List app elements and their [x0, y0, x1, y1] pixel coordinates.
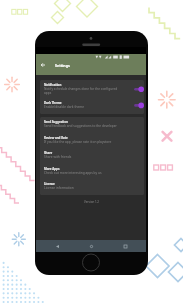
staticText: Review and Rate	[44, 136, 68, 140]
staticText: Share with friends	[44, 155, 72, 159]
staticText: Notification	[44, 83, 62, 87]
staticText: More Apps	[44, 167, 60, 171]
button[interactable]: Back	[53, 242, 61, 250]
button[interactable]: Share	[40, 148, 144, 164]
button[interactable]: Dark Theme	[40, 98, 144, 114]
button[interactable]: Review and Rate	[40, 133, 144, 149]
staticText: Notify schedule changes done for the con…	[44, 87, 121, 95]
staticText: Version 1.2	[40, 200, 143, 204]
staticText: Check out more interesting apps by us	[44, 171, 102, 175]
staticText: Share	[44, 151, 53, 155]
staticText: Settings	[55, 63, 70, 68]
button[interactable]: Notification	[40, 80, 144, 98]
button[interactable]: Recents	[121, 242, 129, 250]
staticText: License information	[44, 186, 74, 190]
staticText: Dark Theme	[44, 101, 62, 105]
button[interactable]: Home	[87, 242, 95, 250]
staticText: Send Suggestion	[44, 120, 68, 124]
staticText: Send feedback and suggestions to the dev…	[44, 124, 117, 128]
button[interactable]: License	[40, 179, 144, 195]
staticText: License	[44, 182, 55, 186]
button[interactable]: More Apps	[40, 164, 144, 180]
button[interactable]: Back	[38, 60, 47, 69]
staticText: Enable/disable dark theme	[44, 105, 85, 109]
staticText: If you like the app, please rate it on p…	[44, 140, 112, 144]
button[interactable]: Send Suggestion	[40, 117, 144, 133]
